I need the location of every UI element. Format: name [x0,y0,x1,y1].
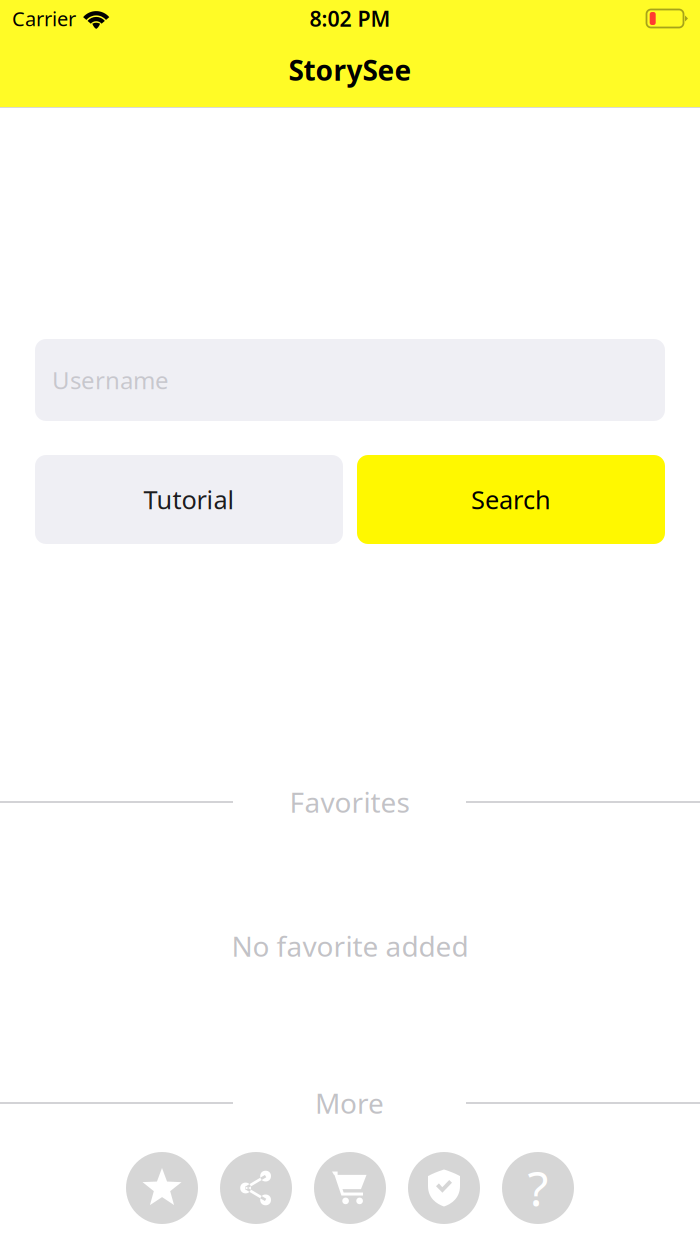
button[interactable]: Help [502,1152,574,1224]
button[interactable]: Username [35,339,665,421]
staticText: Username [52,364,169,396]
button[interactable]: Share [220,1152,292,1224]
staticText: No favorite added [231,927,468,965]
button[interactable]: Favorites [126,1152,198,1224]
staticText: Tutorial [143,483,234,516]
staticText: ? [527,1156,548,1220]
button[interactable]: Privacy [408,1152,480,1224]
staticText: Favorites [289,783,409,821]
button[interactable]: Search [357,455,665,544]
staticText: More [315,1084,384,1122]
staticText: Carrier [12,5,76,32]
button[interactable]: Store [314,1152,386,1224]
staticText: 8:02 PM [309,4,390,33]
button[interactable]: Tutorial [35,455,343,544]
staticText: StorySee [288,51,411,89]
staticText: Search [471,483,551,516]
